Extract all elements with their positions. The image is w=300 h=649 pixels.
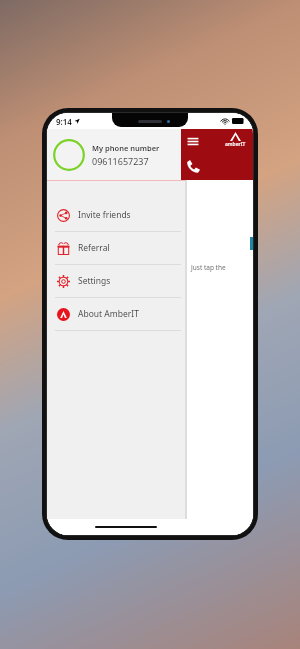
staticText: About AmberIT [78, 308, 139, 320]
button[interactable]: About AmberIT [47, 298, 185, 330]
staticText: 9:14 [56, 116, 72, 127]
staticText: Invite friends [78, 209, 131, 221]
button[interactable]: Referral [47, 232, 185, 264]
button[interactable]: My phone number [47, 129, 185, 180]
staticText: amberIT [225, 141, 246, 148]
staticText: Settings [78, 275, 111, 287]
button[interactable]: Invite friends [47, 199, 185, 231]
staticText: My phone number [92, 143, 160, 153]
button[interactable]: Settings [47, 265, 185, 297]
button[interactable]: Call [186, 159, 201, 174]
button[interactable]: Menu [186, 134, 200, 148]
staticText: 09611657237 [92, 155, 149, 167]
staticText: Just tap the [191, 263, 226, 272]
staticText: Referral [78, 242, 110, 254]
